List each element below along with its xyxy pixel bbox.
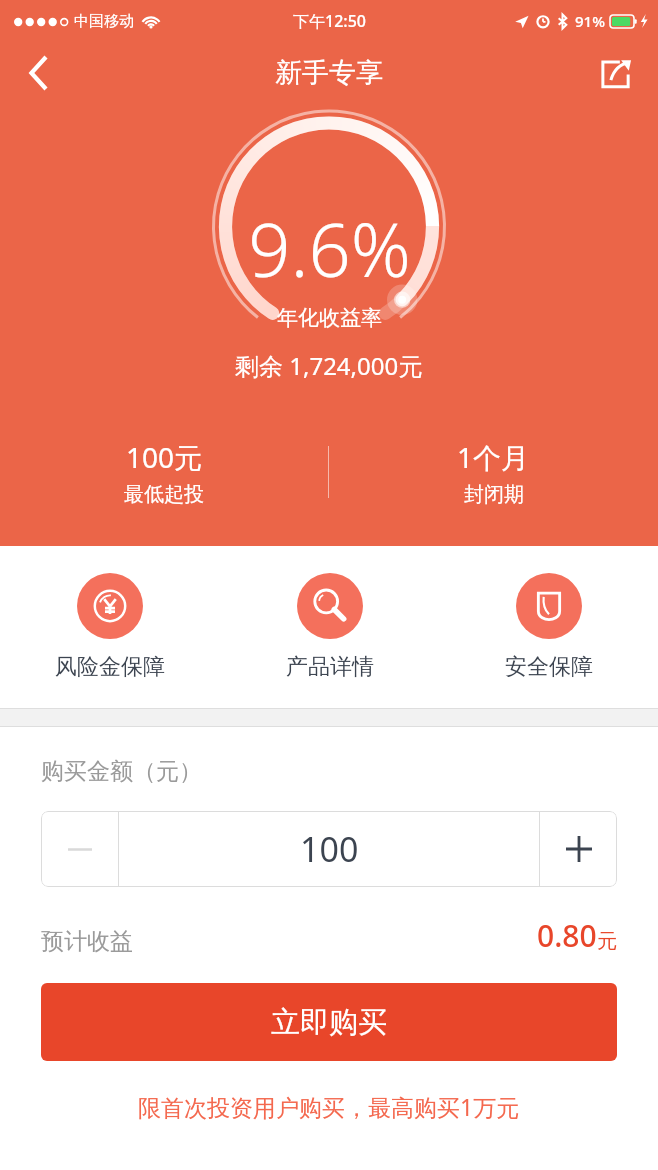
staticText: 剩余 1,724,000元: [235, 349, 423, 382]
button[interactable]: Decrease amount: [41, 811, 118, 887]
staticText: 封闭期: [464, 482, 524, 507]
button[interactable]: Increase amount: [540, 811, 617, 887]
button[interactable]: 安全保障: [439, 546, 658, 708]
staticText: 1个月: [457, 438, 530, 476]
button[interactable]: Share: [588, 45, 644, 101]
staticText: 0.80: [537, 915, 597, 956]
staticText: 产品详情: [286, 653, 374, 681]
staticText: 购买金额（元）: [41, 757, 202, 786]
staticText: 立即购买: [271, 1004, 387, 1041]
staticText: 安全保障: [505, 653, 593, 681]
staticText: 100元: [126, 438, 203, 476]
staticText: 9.6%: [248, 198, 411, 299]
staticText: 预计收益: [41, 927, 133, 956]
staticText: 下午12:50: [293, 10, 366, 32]
staticText: 元: [597, 929, 617, 954]
staticText: 新手专享: [275, 56, 383, 90]
button[interactable]: 立即购买: [41, 983, 617, 1061]
button[interactable]: 风险金保障: [0, 546, 220, 708]
staticText: 100: [300, 826, 359, 872]
staticText: 最低起投: [124, 482, 204, 507]
staticText: 年化收益率: [277, 305, 382, 331]
staticText: 风险金保障: [55, 653, 165, 681]
staticText: 中国移动: [74, 12, 134, 31]
staticText: 91%: [575, 11, 605, 31]
button[interactable]: 产品详情: [220, 546, 439, 708]
button[interactable]: Back: [0, 43, 60, 103]
staticText: 限首次投资用户购买，最高购买1万元: [138, 1091, 520, 1122]
